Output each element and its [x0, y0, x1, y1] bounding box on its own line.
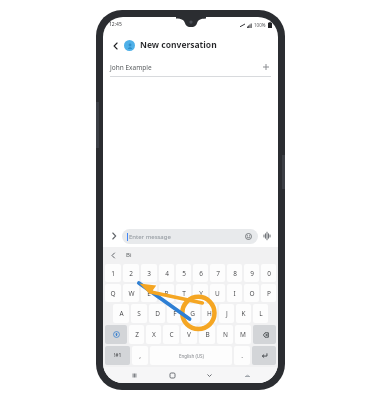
staticText: P [267, 289, 271, 298]
button[interactable]: , [132, 346, 148, 365]
staticText: 2 [129, 269, 133, 278]
staticText: L [259, 309, 263, 318]
staticText: E [147, 289, 151, 298]
staticText: Y [199, 289, 203, 298]
button[interactable]: Back [240, 368, 254, 382]
button[interactable]: X [146, 325, 161, 344]
staticText: Bi [126, 251, 132, 259]
staticText: 12:45 [109, 21, 122, 28]
staticText: A [119, 309, 124, 318]
button[interactable]: Hide keyboard [202, 368, 216, 382]
button[interactable]: Q [105, 284, 121, 302]
staticText: O [249, 289, 255, 298]
staticText: N [223, 330, 228, 339]
button[interactable]: Add recipient [261, 62, 271, 72]
staticText: 5 [182, 269, 186, 278]
button[interactable]: 4 [159, 264, 174, 282]
button[interactable]: 5 [176, 264, 191, 282]
staticText: . [241, 351, 243, 360]
button[interactable]: U [210, 284, 225, 302]
button[interactable]: N [217, 325, 233, 344]
staticText: M [240, 330, 246, 339]
staticText: T [182, 289, 186, 298]
button[interactable]: F [167, 304, 183, 323]
button[interactable]: John Example [110, 58, 271, 76]
button[interactable]: K [236, 304, 251, 323]
button[interactable]: I [227, 284, 242, 302]
staticText: 100% [254, 22, 266, 28]
button[interactable]: Voice message [261, 230, 273, 242]
button[interactable]: 1 [105, 264, 121, 282]
button[interactable]: Home [165, 368, 179, 382]
button[interactable]: W [123, 284, 139, 302]
button[interactable]: V [181, 325, 197, 344]
button[interactable]: R [159, 284, 174, 302]
staticText: I [233, 289, 236, 298]
button[interactable]: Attach [108, 230, 120, 242]
button[interactable]: J [219, 304, 234, 323]
button[interactable]: O [244, 284, 259, 302]
staticText: Z [135, 330, 139, 339]
staticText: Enter message [129, 233, 244, 241]
button[interactable]: Previous suggestions [108, 250, 118, 260]
staticText: 3 [147, 269, 151, 278]
button[interactable]: S [131, 304, 147, 323]
button[interactable]: P [261, 284, 276, 302]
button[interactable]: 2 [123, 264, 139, 282]
staticText: , [139, 351, 141, 360]
staticText: John Example [110, 63, 261, 72]
staticText: 0 [267, 269, 271, 278]
staticText: 9 [250, 269, 254, 278]
button[interactable]: C [163, 325, 179, 344]
staticText: 4 [165, 269, 169, 278]
staticText: 6 [199, 269, 203, 278]
button[interactable]: G [185, 304, 200, 323]
button[interactable]: M [235, 325, 251, 344]
staticText: English (US) [179, 353, 204, 359]
button[interactable]: L [253, 304, 268, 323]
staticText: B [205, 330, 210, 339]
staticText: !#1 [114, 352, 122, 359]
button[interactable]: . [234, 346, 250, 365]
staticText: F [173, 309, 177, 318]
button[interactable]: 9 [244, 264, 259, 282]
button[interactable]: D [149, 304, 165, 323]
staticText: New conversation [140, 39, 217, 51]
staticText: W [128, 289, 135, 298]
button[interactable]: Back [109, 39, 122, 52]
staticText: C [169, 330, 174, 339]
button[interactable]: Symbols [105, 346, 130, 365]
staticText: V [187, 330, 191, 339]
button[interactable]: Recents [127, 368, 141, 382]
button[interactable]: H [202, 304, 217, 323]
staticText: X [152, 330, 156, 339]
button[interactable]: 6 [193, 264, 208, 282]
staticText: Q [110, 289, 116, 298]
staticText: R [164, 289, 169, 298]
button[interactable]: Emoji [244, 232, 253, 241]
button[interactable]: 8 [227, 264, 242, 282]
staticText: 8 [233, 269, 237, 278]
button[interactable]: Contact avatar [124, 40, 135, 51]
button[interactable]: Y [193, 284, 208, 302]
button[interactable]: B [199, 325, 215, 344]
staticText: D [155, 309, 160, 318]
staticText: K [241, 309, 246, 318]
button[interactable]: T [176, 284, 191, 302]
staticText: H [207, 309, 212, 318]
button[interactable]: English (US) [150, 346, 232, 365]
button[interactable]: Z [129, 325, 144, 344]
button[interactable]: A [113, 304, 129, 323]
button[interactable]: E [141, 284, 157, 302]
button[interactable]: Enter [252, 346, 276, 365]
staticText: 1 [111, 269, 115, 278]
staticText: 7 [216, 269, 220, 278]
staticText: S [137, 309, 141, 318]
button[interactable]: 0 [261, 264, 276, 282]
staticText: G [190, 309, 195, 318]
button[interactable]: Enter message [122, 229, 258, 244]
button[interactable]: Backspace [253, 325, 276, 344]
button[interactable]: Shift [105, 325, 127, 344]
button[interactable]: 3 [141, 264, 157, 282]
button[interactable]: 7 [210, 264, 225, 282]
